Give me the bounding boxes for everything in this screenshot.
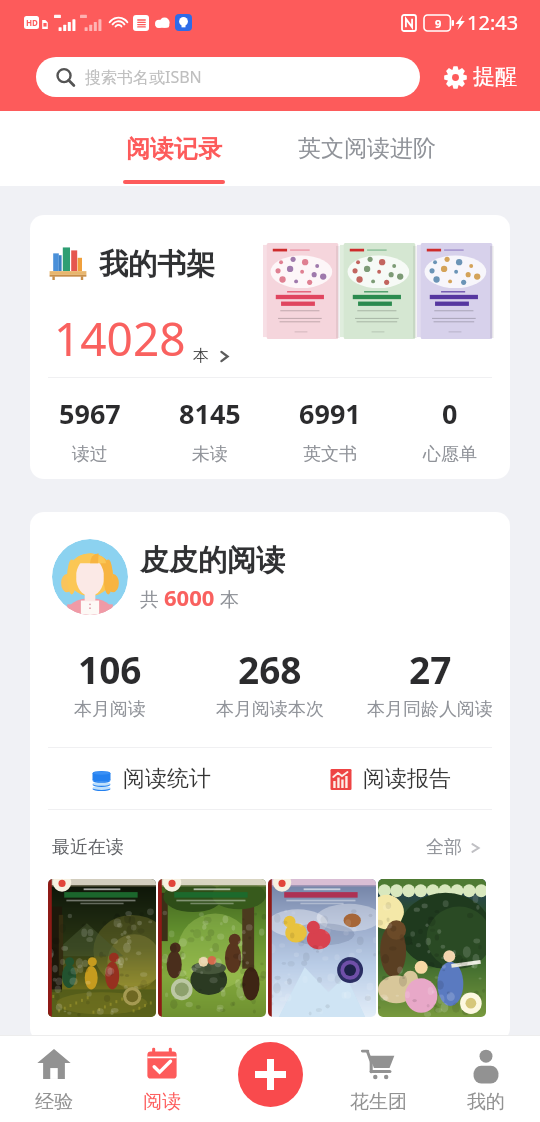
staticText: 搜索书名或ISBN <box>85 66 202 88</box>
staticText: 本月阅读本次 <box>216 698 324 721</box>
button[interactable]: 搜索书名或ISBN <box>36 57 420 97</box>
staticText: 9 <box>435 16 442 31</box>
staticText: HD <box>26 17 38 28</box>
staticText: 英文书 <box>303 443 357 466</box>
staticText: 共 <box>140 586 164 612</box>
staticText: 12:43 <box>467 9 519 36</box>
button[interactable]: 268 <box>190 644 350 721</box>
button[interactable] <box>268 879 376 1017</box>
staticText: 268 <box>238 644 302 694</box>
button[interactable]: 阅读报告 <box>270 748 510 809</box>
button[interactable]: 英文阅读进阶 <box>282 111 452 186</box>
staticText: 全部 <box>426 836 462 859</box>
button[interactable]: 5967 <box>30 395 150 466</box>
staticText: 我的书架 <box>99 246 215 283</box>
staticText: 我的 <box>467 1090 505 1114</box>
button[interactable] <box>158 879 266 1017</box>
staticText: 阅读报告 <box>363 765 451 793</box>
staticText: 6991 <box>299 395 361 432</box>
staticText: 心愿单 <box>423 443 477 466</box>
staticText: 本 <box>215 586 239 612</box>
staticText: 本月同龄人阅读 <box>367 698 493 721</box>
button[interactable]: 提醒 <box>444 57 517 97</box>
staticText: 花生团 <box>350 1090 407 1114</box>
button[interactable]: 阅读 <box>108 1035 216 1122</box>
button[interactable]: 阅读记录 <box>102 111 246 186</box>
staticText: 最近在读 <box>52 836 124 859</box>
button[interactable]: 8145 <box>150 395 270 466</box>
staticText: 14028 <box>54 307 186 370</box>
button[interactable]: 27 <box>350 644 510 721</box>
button[interactable]: 6991 <box>270 395 390 466</box>
staticText: 阅读统计 <box>123 765 211 793</box>
staticText: 0 <box>442 395 458 432</box>
staticText: 本 <box>193 346 209 366</box>
staticText: 经验 <box>35 1090 73 1114</box>
staticText: 未读 <box>192 443 228 466</box>
button[interactable] <box>48 879 156 1017</box>
staticText: 皮皮的阅读 <box>140 542 285 579</box>
button[interactable]: 经验 <box>0 1035 108 1122</box>
staticText: 27 <box>409 644 452 694</box>
button[interactable]: 106 <box>30 644 190 721</box>
staticText: 阅读 <box>143 1090 181 1114</box>
button[interactable] <box>378 879 486 1017</box>
staticText: 读过 <box>72 443 108 466</box>
staticText: 6000 <box>164 582 215 612</box>
staticText: 本月阅读 <box>74 698 146 721</box>
staticText: 提醒 <box>473 63 517 91</box>
button[interactable]: 14028 <box>54 307 230 370</box>
staticText: 英文阅读进阶 <box>298 134 436 163</box>
staticText: 8145 <box>179 395 241 432</box>
staticText: 阅读记录 <box>126 134 222 164</box>
button[interactable]: Add book <box>238 1042 303 1107</box>
button[interactable]: 阅读统计 <box>30 748 270 809</box>
button[interactable]: 全部 <box>426 836 481 859</box>
staticText: 106 <box>78 644 142 694</box>
staticText: 5967 <box>59 395 121 432</box>
button[interactable]: 花生团 <box>324 1035 432 1122</box>
button[interactable]: 0 <box>390 395 510 466</box>
button[interactable]: 我的 <box>432 1035 540 1122</box>
